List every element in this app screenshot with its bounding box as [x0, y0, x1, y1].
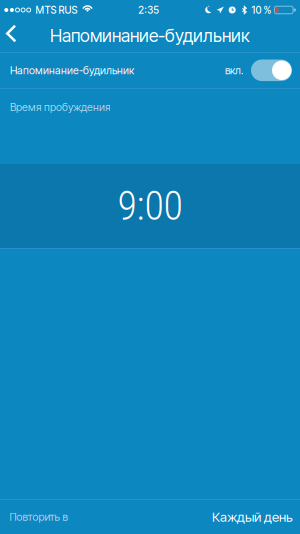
staticText: Каждый день [212, 509, 293, 525]
button[interactable]: Напоминание-будильник [0, 53, 300, 88]
staticText: MTS RUS [35, 4, 77, 16]
staticText: вкл. [225, 64, 244, 77]
staticText: Повторить в [9, 510, 67, 523]
staticText: Напоминание-будильник [10, 64, 134, 77]
button[interactable]: Повторить в [0, 500, 300, 534]
staticText: 10 % [251, 4, 271, 16]
button[interactable]: Назад [0, 20, 29, 52]
staticText: Время пробуждения [10, 101, 110, 113]
staticText: Напоминание-будильник [50, 25, 250, 46]
staticText: 9:00 [117, 183, 182, 229]
staticText: 2:35 [138, 4, 159, 16]
